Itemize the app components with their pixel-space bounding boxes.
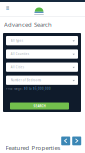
staticText: Advanced Search <box>4 20 52 28</box>
staticText: $0 to $5,000,000 <box>24 87 51 91</box>
staticText: Featured Properties <box>6 144 61 152</box>
button[interactable]: Previous <box>61 136 70 145</box>
button[interactable]: All Counties <box>6 49 78 59</box>
staticText: Number of Bedrooms <box>11 78 41 82</box>
staticText: All Types <box>11 39 23 42</box>
button[interactable]: All Types <box>6 36 78 45</box>
button[interactable]: Menu <box>3 4 12 13</box>
button[interactable]: Next <box>72 136 81 145</box>
staticText: All Cities <box>11 65 24 69</box>
staticText: SEARCH <box>33 104 45 108</box>
staticText: All Counties <box>11 52 29 56</box>
button[interactable]: SEARCH <box>10 102 69 109</box>
button[interactable]: All Cities <box>6 62 78 72</box>
staticText: Price range: <box>6 87 23 91</box>
button[interactable]: Number of Bedrooms <box>6 76 78 85</box>
